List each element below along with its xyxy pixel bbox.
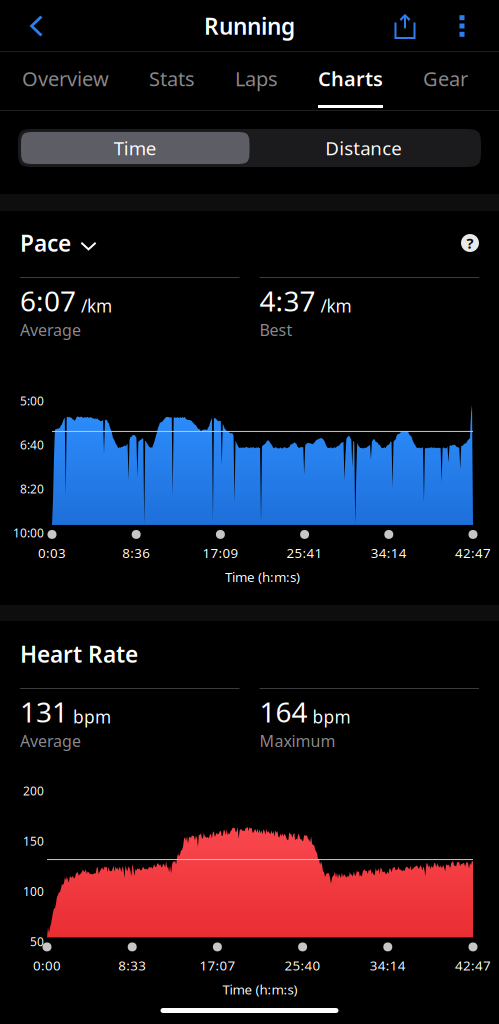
staticText: Time [114, 136, 157, 160]
staticText: 131 [20, 693, 68, 730]
staticText: 100 [23, 883, 44, 899]
staticText: Time (h:m:s) [225, 568, 300, 586]
staticText: ? [466, 233, 473, 253]
staticText: Distance [325, 136, 402, 160]
staticText: 0:00 [33, 956, 61, 974]
staticText: 200 [23, 783, 44, 799]
staticText: Pace [20, 228, 71, 258]
staticText: 25:41 [287, 544, 323, 562]
staticText: Best [259, 319, 292, 340]
button[interactable]: Time [21, 132, 249, 164]
staticText: 17:07 [199, 956, 235, 974]
staticText: bpm [73, 705, 111, 728]
staticText: Stats [149, 65, 195, 92]
button[interactable]: Back [0, 0, 76, 52]
staticText: Laps [235, 65, 278, 92]
button[interactable]: Share [381, 0, 437, 52]
staticText: 8:33 [118, 956, 146, 974]
staticText: Maximum [259, 730, 335, 751]
button[interactable]: Laps [235, 52, 278, 111]
staticText: Average [20, 730, 81, 751]
staticText: Average [20, 319, 81, 340]
staticText: Overview [22, 65, 109, 92]
staticText: 0:03 [38, 544, 66, 562]
button[interactable]: Gear [423, 52, 468, 111]
staticText: 8:20 [20, 481, 44, 497]
staticText: 5:00 [20, 393, 44, 409]
staticText: 50 [30, 934, 44, 949]
button[interactable]: Distance [249, 132, 478, 164]
staticText: 34:14 [371, 544, 407, 562]
button[interactable]: Stats [149, 52, 195, 111]
staticText: 25:40 [285, 956, 321, 974]
staticText: Gear [423, 65, 468, 92]
button[interactable]: More options [437, 0, 499, 52]
staticText: 42:47 [455, 956, 491, 974]
button[interactable]: Overview [22, 52, 109, 111]
staticText: 164 [259, 693, 307, 730]
staticText: Charts [318, 65, 383, 92]
staticText: 34:14 [370, 956, 406, 974]
staticText: /km [320, 294, 351, 317]
button[interactable]: Charts [318, 52, 383, 111]
staticText: Running [204, 11, 295, 41]
staticText: Heart Rate [20, 639, 138, 669]
staticText: /km [81, 294, 112, 317]
staticText: 6:07 [20, 282, 76, 319]
staticText: 10:00 [13, 525, 44, 541]
button[interactable]: Pace [20, 229, 96, 257]
staticText: 17:09 [202, 544, 238, 562]
button[interactable]: Help [461, 229, 479, 257]
staticText: bpm [312, 705, 350, 728]
staticText: 150 [23, 833, 44, 849]
staticText: 4:37 [259, 282, 315, 319]
staticText: 6:40 [20, 437, 44, 453]
staticText: Time (h:m:s) [222, 980, 297, 998]
staticText: 8:36 [122, 544, 150, 562]
staticText: 42:47 [455, 544, 491, 562]
